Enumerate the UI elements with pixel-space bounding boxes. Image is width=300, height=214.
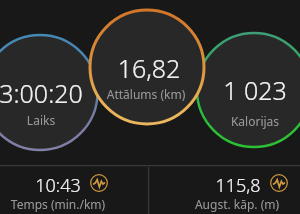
button[interactable]: 115,8	[149, 166, 300, 214]
button[interactable]: Average pace details	[90, 174, 108, 192]
button[interactable]: Total ascent details	[270, 174, 288, 192]
staticText: 10:43	[13, 173, 103, 197]
staticText: Temps (min./km)	[0, 196, 123, 212]
staticText: 16,82	[94, 51, 204, 81]
staticText: 3:00:20	[0, 76, 97, 106]
button[interactable]: 1 023	[197, 33, 300, 147]
button[interactable]: 10:43	[0, 166, 148, 214]
staticText: Kalorijas	[200, 113, 300, 129]
staticText: 1 023	[200, 73, 300, 103]
staticText: Attālums (km)	[91, 86, 201, 102]
button[interactable]: 16,82	[90, 10, 204, 124]
staticText: Augst. kāp. (m)	[172, 196, 300, 212]
staticText: 115,8	[193, 173, 283, 197]
staticText: Laiks	[0, 112, 86, 128]
button[interactable]: 3:00:20	[0, 35, 98, 150]
